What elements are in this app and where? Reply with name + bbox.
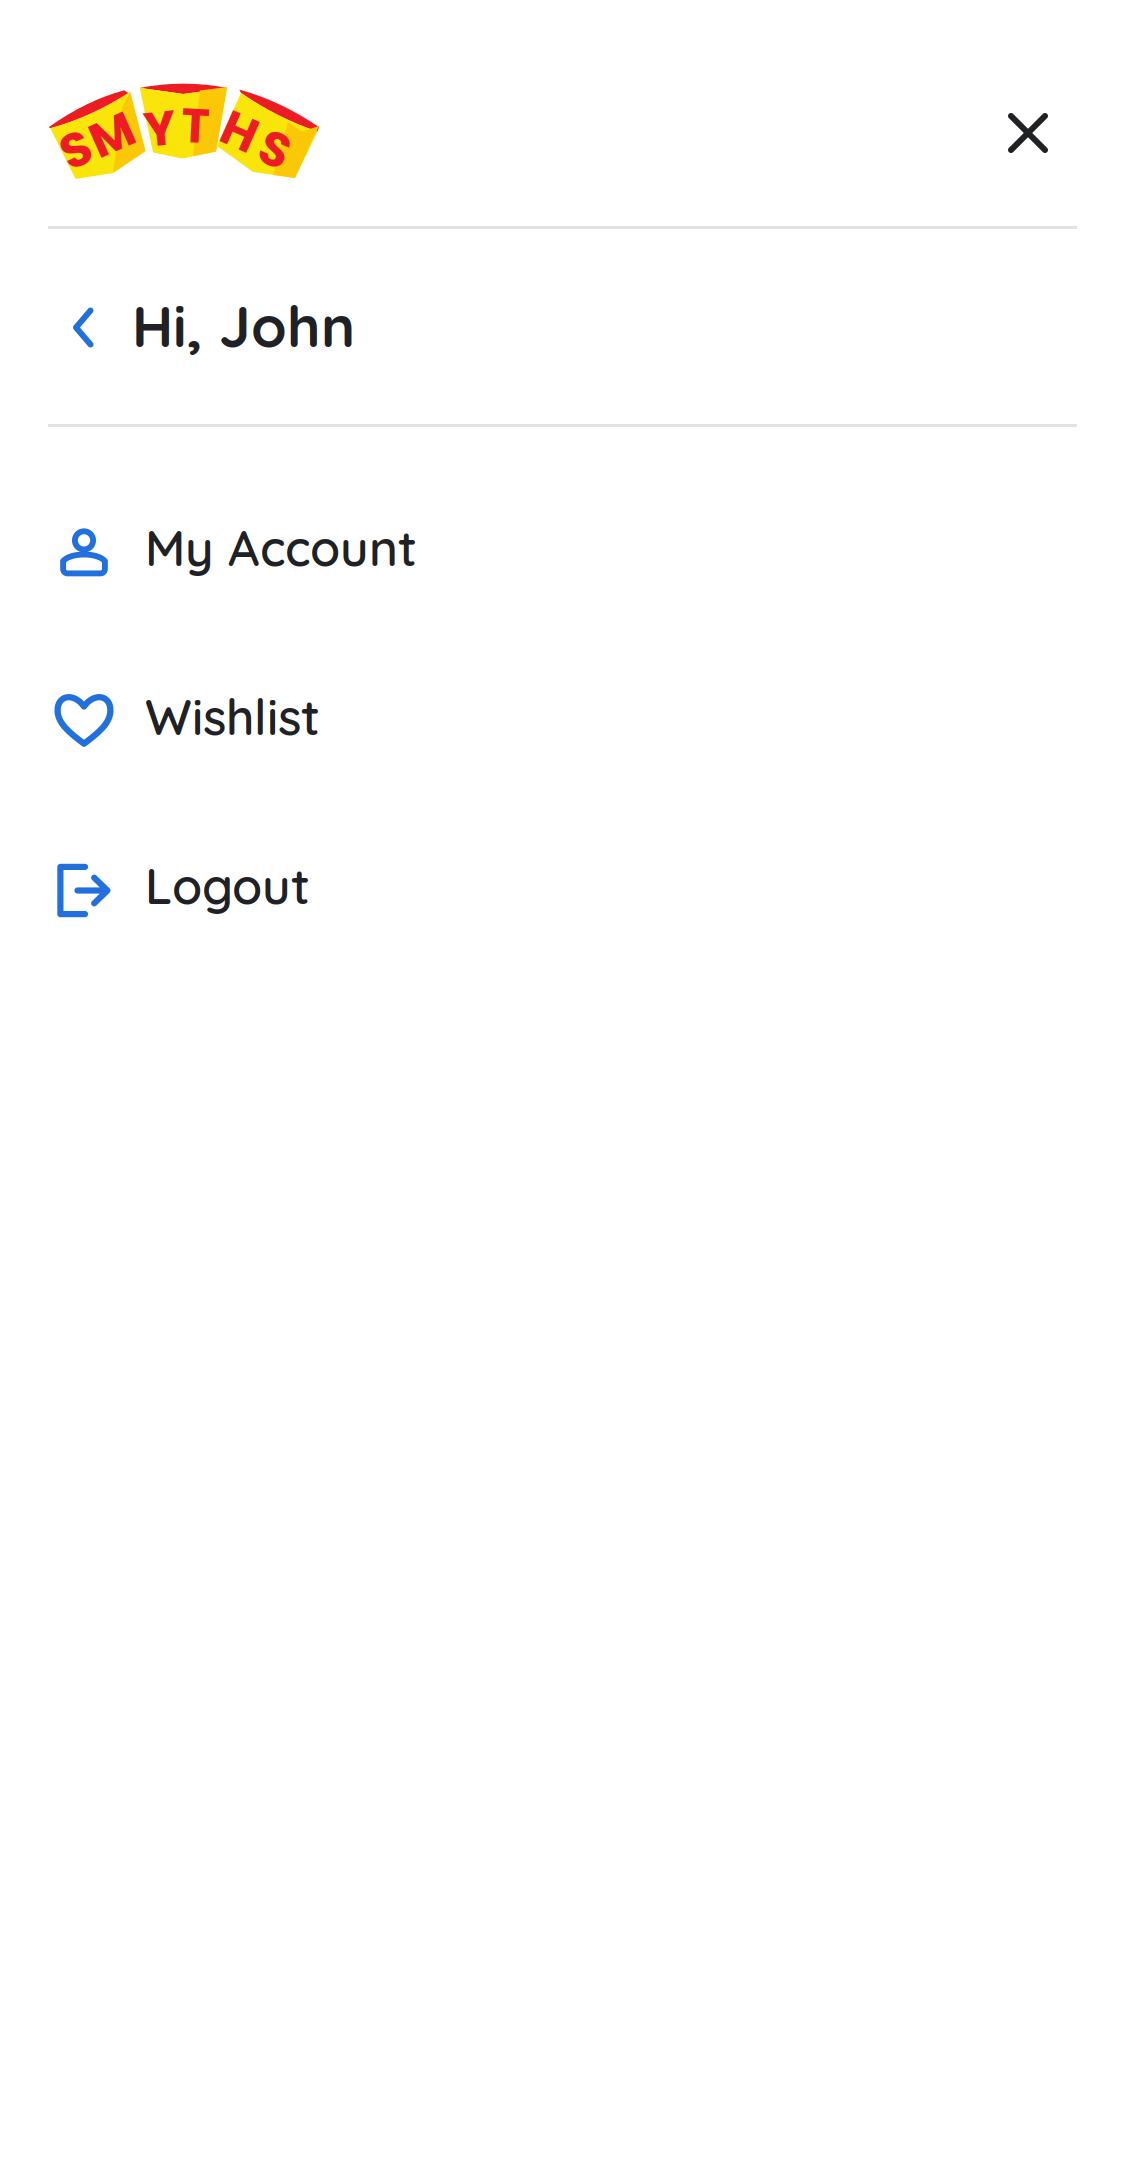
staticText: S [260,116,290,183]
button[interactable]: Close [989,94,1067,172]
staticText: Wishlist [145,686,320,747]
staticText: Logout [145,855,310,916]
button[interactable]: Wishlist [0,637,1125,806]
button[interactable]: Hi, John [0,229,1125,424]
staticText: H [222,98,257,165]
staticText: My Account [145,517,417,578]
staticText: S [61,116,91,183]
staticText: M [90,101,134,168]
staticText: Y [144,95,176,162]
staticText: T [181,92,209,159]
button[interactable]: My Account [0,468,1125,637]
button[interactable]: Logout [0,806,1125,975]
staticText: Hi, John [132,290,355,361]
